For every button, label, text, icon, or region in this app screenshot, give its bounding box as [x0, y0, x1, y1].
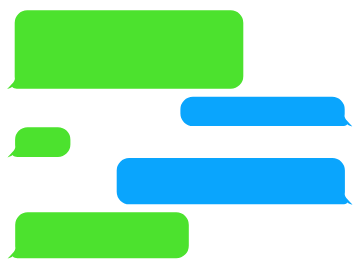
- button[interactable]: Sent message: [180, 97, 344, 126]
- button[interactable]: Received message: [15, 127, 70, 157]
- button[interactable]: Received message: [15, 212, 189, 258]
- button[interactable]: Received message: [15, 10, 244, 88]
- button[interactable]: Sent message: [117, 158, 345, 204]
